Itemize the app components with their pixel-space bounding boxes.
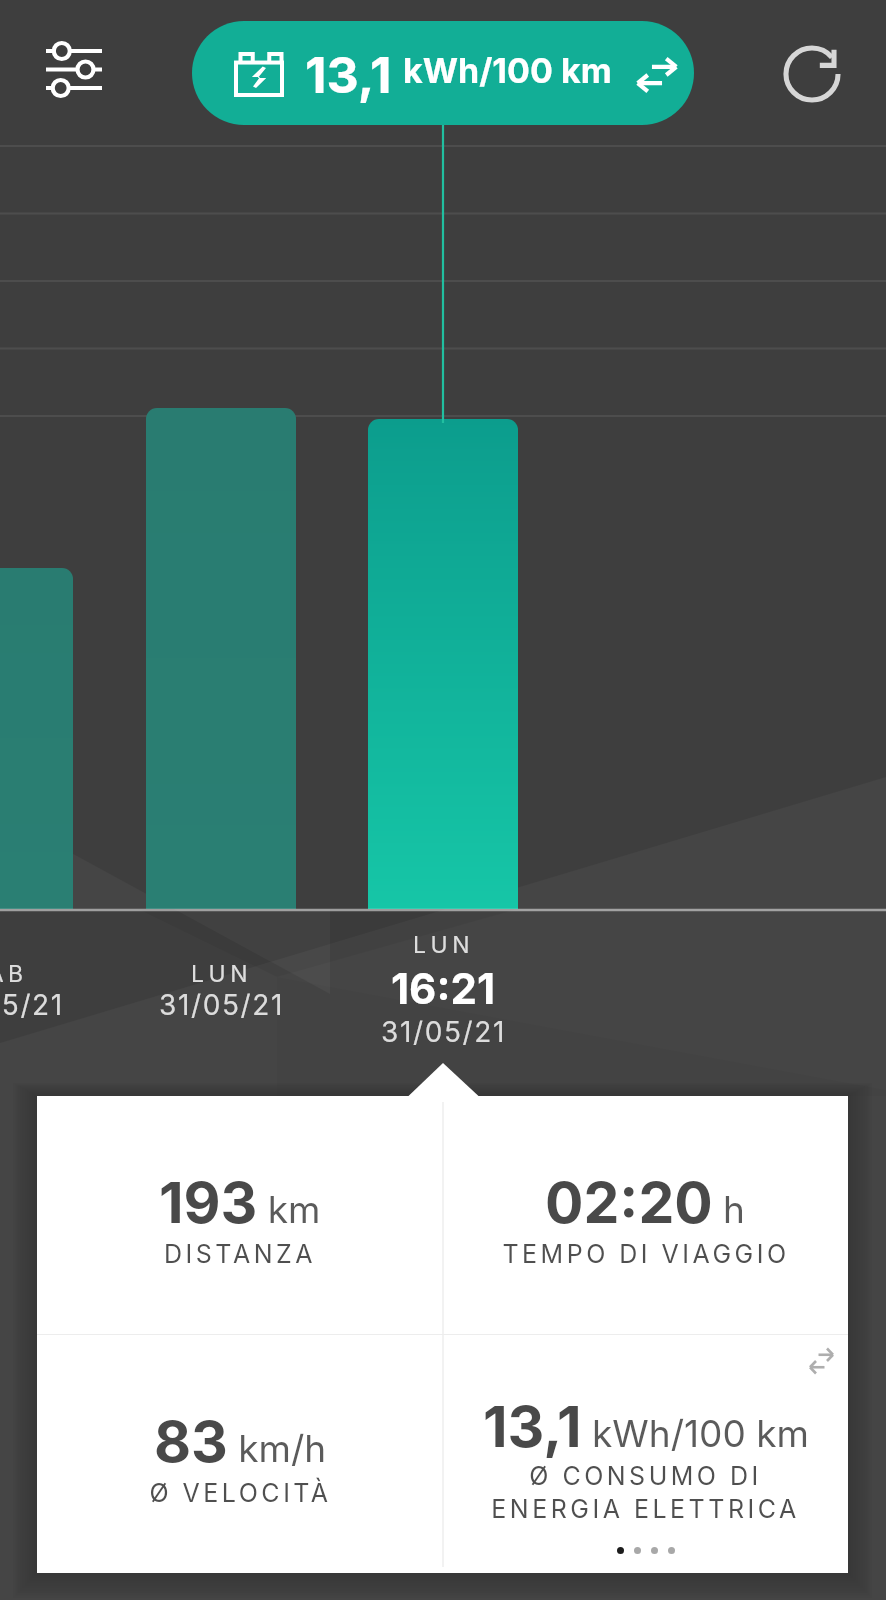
staticText: 13,1 kWh/100 km	[483, 1392, 809, 1461]
button[interactable]: LUN	[146, 960, 296, 1022]
staticText: TEMPO DI VIAGGIO	[502, 1239, 790, 1269]
button[interactable]: 193 km	[37, 1096, 443, 1334]
button[interactable]: SAB	[0, 960, 73, 1022]
button[interactable]: 13,1 kWh/100 km	[443, 1335, 848, 1573]
staticText: SAB	[0, 960, 28, 988]
staticText: LUN	[191, 960, 252, 988]
staticText: 31/05/21	[159, 988, 284, 1022]
staticText: 13,1	[305, 45, 392, 105]
button[interactable]: 13,1	[192, 21, 694, 125]
button[interactable]: 83 km/h	[37, 1335, 443, 1573]
staticText: LUN	[413, 931, 474, 959]
staticText: Ø VELOCITÀ	[149, 1478, 332, 1508]
button[interactable]: Filter settings	[24, 19, 124, 119]
staticText: 02:20 h	[545, 1168, 746, 1237]
staticText: 193 km	[159, 1168, 321, 1237]
staticText: kWh/100 km	[403, 50, 612, 91]
staticText: 31/05/21	[381, 1015, 506, 1049]
staticText: 83 km/h	[154, 1407, 327, 1476]
button[interactable]	[612, 1547, 680, 1554]
staticText: 29/05/21	[0, 988, 64, 1022]
button[interactable]: 02:20 h	[443, 1096, 848, 1334]
staticText: DISTANZA	[164, 1239, 316, 1269]
button[interactable]: Switch unit	[809, 1348, 837, 1376]
button[interactable]: Refresh	[764, 26, 860, 122]
staticText: 16:21	[391, 963, 495, 1014]
button[interactable]: LUN	[368, 931, 518, 1049]
staticText: Ø CONSUMO DI ENERGIA ELETTRICA	[491, 1461, 800, 1524]
